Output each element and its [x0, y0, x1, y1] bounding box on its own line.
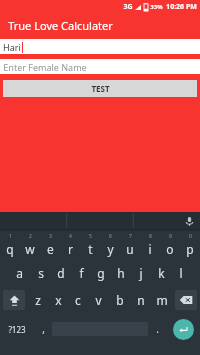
staticText: n: [137, 292, 145, 308]
button[interactable]: 7: [120, 232, 140, 258]
staticText: 4: [69, 233, 72, 240]
button[interactable]: Backspace: [175, 290, 197, 310]
button[interactable]: m: [151, 288, 172, 312]
staticText: 8: [149, 233, 152, 240]
button[interactable]: Voice input: [183, 215, 195, 227]
staticText: 0: [189, 233, 192, 240]
staticText: ,: [42, 322, 45, 336]
button[interactable]: d: [51, 261, 71, 285]
button[interactable]: v: [88, 288, 109, 312]
staticText: 10:26 PM: [166, 2, 197, 12]
button[interactable]: 6: [100, 232, 120, 258]
button[interactable]: n: [130, 288, 151, 312]
staticText: l: [179, 265, 183, 281]
staticText: c: [75, 292, 81, 308]
staticText: s: [38, 265, 44, 281]
staticText: i: [148, 241, 152, 257]
staticText: 5: [89, 233, 92, 240]
button[interactable]: j: [131, 261, 151, 285]
button[interactable]: 3: [40, 232, 60, 258]
button[interactable]: TEST: [3, 80, 197, 97]
staticText: u: [126, 241, 134, 257]
staticText: e: [47, 241, 54, 257]
button[interactable]: 8: [140, 232, 160, 258]
staticText: p: [186, 241, 194, 257]
button[interactable]: 5: [80, 232, 100, 258]
staticText: a: [16, 265, 23, 281]
staticText: g: [97, 265, 105, 281]
button[interactable]: Hari: [0, 39, 200, 54]
staticText: v: [95, 292, 102, 308]
staticText: .: [156, 322, 159, 336]
staticText: 2: [29, 233, 32, 240]
button[interactable]: x: [48, 288, 68, 312]
staticText: t: [88, 241, 93, 257]
button[interactable]: k: [151, 261, 171, 285]
button[interactable]: b: [109, 288, 130, 312]
button[interactable]: 2: [20, 232, 40, 258]
button[interactable]: Enter Female Name: [0, 59, 200, 74]
staticText: 3: [49, 233, 52, 240]
staticText: 1: [9, 233, 12, 240]
button[interactable]: ?123: [0, 317, 34, 341]
staticText: z: [35, 292, 41, 308]
staticText: 9: [169, 233, 172, 240]
button[interactable]: f: [71, 261, 91, 285]
staticText: d: [57, 265, 65, 281]
staticText: q: [6, 241, 14, 257]
staticText: w: [25, 241, 35, 257]
staticText: 6: [109, 233, 112, 240]
button[interactable]: h: [111, 261, 131, 285]
staticText: o: [166, 241, 174, 257]
staticText: y: [107, 241, 114, 257]
staticText: k: [158, 265, 165, 281]
staticText: f: [79, 265, 84, 281]
staticText: m: [156, 292, 168, 308]
button[interactable]: Shift: [3, 290, 25, 310]
button[interactable]: 4: [60, 232, 80, 258]
button[interactable]: s: [30, 261, 51, 285]
staticText: Hari: [3, 41, 21, 53]
staticText: r: [68, 241, 73, 257]
staticText: 7: [129, 233, 132, 240]
button[interactable]: Enter: [173, 319, 194, 340]
staticText: b: [116, 292, 124, 308]
button[interactable]: g: [91, 261, 111, 285]
staticText: 33%: [150, 3, 163, 11]
button[interactable]: 1: [0, 232, 20, 258]
staticText: True Love Calculater: [8, 18, 113, 33]
button[interactable]: l: [171, 261, 191, 285]
button[interactable]: 9: [160, 232, 180, 258]
button[interactable]: z: [28, 288, 48, 312]
staticText: ?123: [8, 324, 26, 335]
staticText: Enter Female Name: [3, 61, 87, 73]
staticText: h: [117, 265, 125, 281]
staticText: j: [139, 265, 143, 281]
staticText: 3G: [123, 2, 133, 12]
staticText: TEST: [91, 83, 110, 94]
button[interactable]: c: [68, 288, 88, 312]
staticText: x: [55, 292, 62, 308]
button[interactable]: .: [148, 317, 166, 341]
button[interactable]: 0: [180, 232, 200, 258]
button[interactable]: a: [9, 261, 30, 285]
button[interactable]: ,: [34, 317, 52, 341]
